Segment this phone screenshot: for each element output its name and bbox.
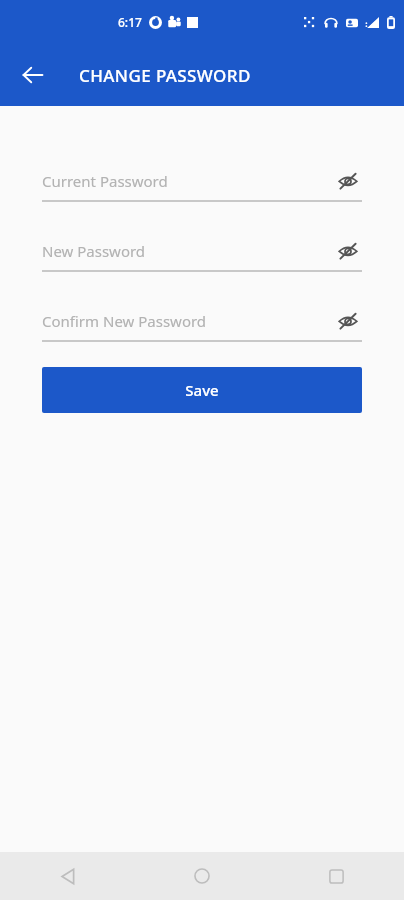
button[interactable]: Home	[134, 852, 269, 900]
button[interactable]: Show password	[334, 237, 362, 265]
button[interactable]: New Password	[42, 236, 362, 272]
button[interactable]: Back	[0, 852, 134, 900]
button[interactable]: Current Password	[42, 166, 362, 202]
button[interactable]: Save	[42, 367, 362, 413]
button[interactable]: Confirm New Password	[42, 306, 362, 342]
staticText: New Password	[42, 241, 334, 261]
button[interactable]: Show password	[334, 307, 362, 335]
button[interactable]: Recent apps	[269, 852, 404, 900]
staticText: Confirm New Password	[42, 311, 334, 331]
staticText: Current Password	[42, 171, 334, 191]
staticText: Save	[185, 380, 219, 400]
staticText: CHANGE PASSWORD	[79, 64, 251, 87]
staticText: 6:17	[118, 14, 142, 30]
button[interactable]: Show password	[334, 167, 362, 195]
button[interactable]: Back	[13, 55, 53, 95]
